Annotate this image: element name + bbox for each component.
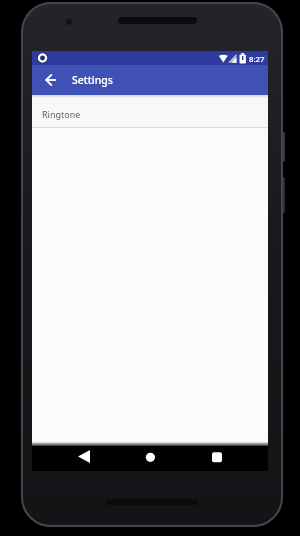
button[interactable] [134, 443, 166, 469]
button[interactable] [68, 443, 100, 469]
staticText: 8:27 [249, 54, 265, 65]
staticText: Ringtone [42, 108, 81, 120]
button[interactable] [32, 65, 268, 95]
button[interactable] [32, 95, 268, 127]
button[interactable] [200, 443, 232, 469]
staticText: Settings [72, 73, 113, 87]
